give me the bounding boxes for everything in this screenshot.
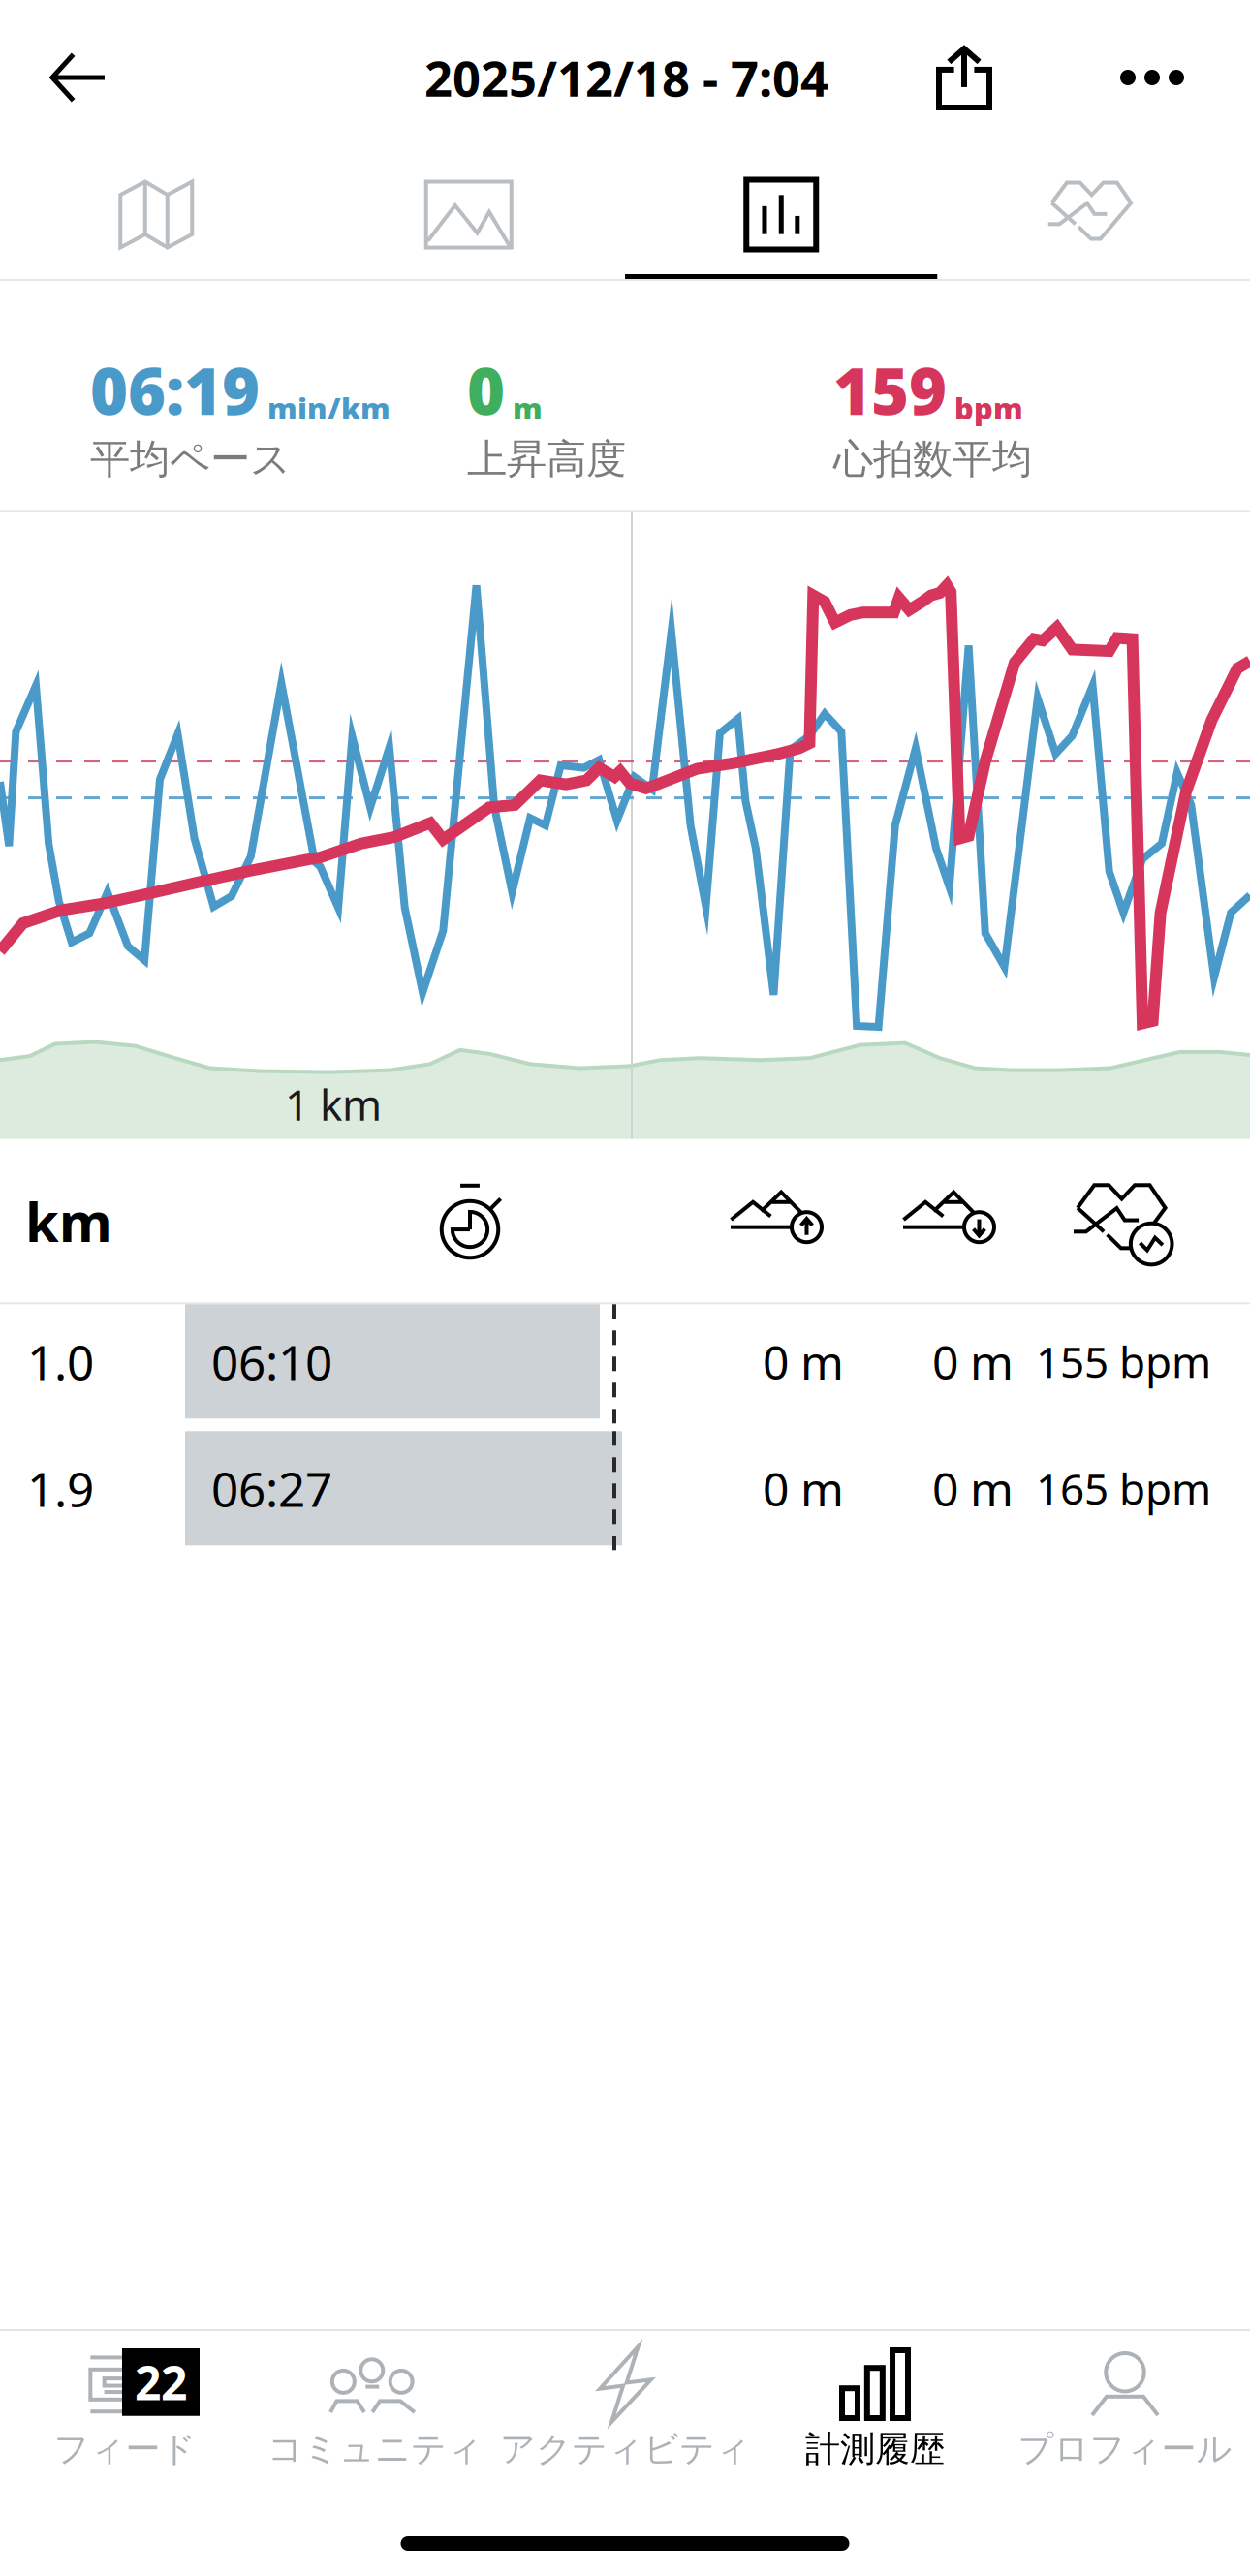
staticText: 1.0 — [27, 1330, 94, 1393]
staticText: アクティビティ — [500, 2428, 751, 2471]
button[interactable]: Map — [0, 155, 312, 279]
button[interactable]: Back — [0, 24, 138, 131]
button[interactable]: Heart rate — [937, 155, 1250, 279]
button[interactable]: Photos — [312, 155, 625, 279]
staticText: 06:19 — [90, 347, 260, 433]
button[interactable]: プロフィール — [1000, 2346, 1250, 2471]
button[interactable]: More — [1044, 23, 1250, 132]
staticText: 0 m — [763, 1331, 844, 1392]
staticText: 06:10 — [211, 1330, 332, 1393]
button[interactable]: 22 — [0, 2346, 250, 2471]
button[interactable]: コミュニティ — [250, 2346, 500, 2471]
staticText: 2025/12/18 - 7:04 — [424, 45, 828, 110]
button[interactable]: Charts — [625, 155, 937, 279]
staticText: 165 bpm — [1036, 1460, 1211, 1517]
button[interactable]: アクティビティ — [500, 2346, 750, 2471]
button[interactable]: 計測履歴 — [750, 2346, 1000, 2471]
button[interactable]: Share — [864, 20, 1044, 135]
staticText: プロフィール — [1018, 2428, 1232, 2471]
staticText: bpm — [954, 388, 1023, 428]
staticText: km — [25, 1185, 112, 1257]
staticText: 159 — [833, 347, 947, 433]
staticText: 計測履歴 — [805, 2428, 945, 2471]
staticText: 0 — [467, 347, 505, 433]
staticText: 1 km — [285, 1076, 382, 1133]
staticText: 22 — [135, 2351, 187, 2413]
staticText: 0 m — [932, 1331, 1014, 1392]
staticText: 06:27 — [211, 1457, 332, 1520]
staticText: 0 m — [932, 1457, 1014, 1519]
staticText: 上昇高度 — [467, 435, 626, 484]
staticText: m — [513, 388, 543, 428]
staticText: 平均ペース — [90, 435, 291, 484]
staticText: 155 bpm — [1036, 1333, 1211, 1390]
staticText: 0 m — [763, 1457, 844, 1519]
staticText: フィード — [54, 2428, 196, 2471]
staticText: 心拍数平均 — [833, 435, 1032, 484]
staticText: コミュニティ — [267, 2428, 483, 2471]
staticText: 1.9 — [27, 1457, 94, 1520]
staticText: min/km — [267, 388, 391, 428]
